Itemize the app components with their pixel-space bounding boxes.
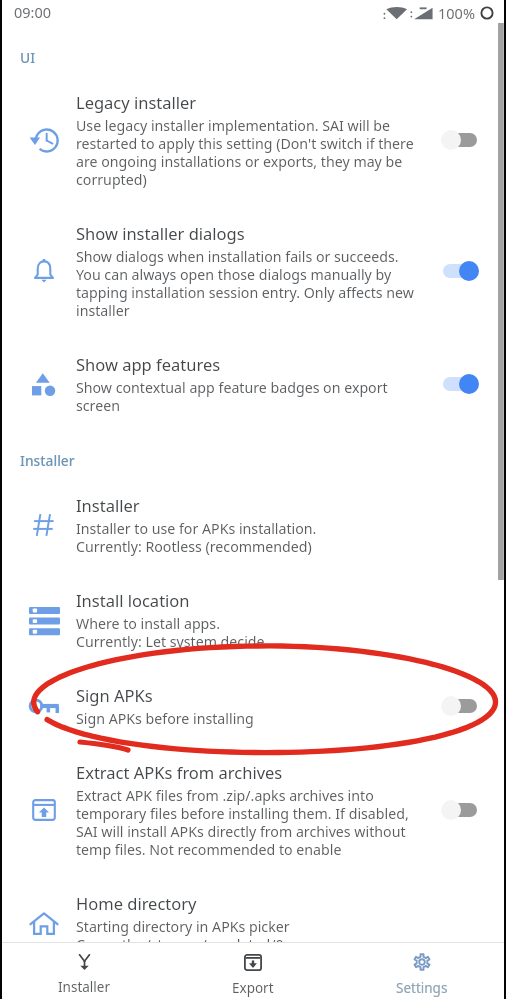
staticText: Sign APKs before installing [76,709,254,728]
button[interactable]: Toggle [450,125,502,155]
staticText: Installer [20,451,75,470]
staticText: Settings [396,979,448,997]
button[interactable]: Sign APKs [0,668,506,745]
button[interactable]: Toggle [450,691,502,721]
button[interactable]: Show installer dialogs [0,206,506,337]
staticText: Show contextual app feature badges on ex… [76,378,419,415]
staticText: Installer to use for APKs installation. … [76,519,317,556]
other: Export [244,954,262,971]
button[interactable]: Settings [337,943,506,999]
staticText: 09:00 [14,2,52,22]
button[interactable]: Legacy installer [0,75,506,206]
staticText: Where to install apps. Currently: Let sy… [76,614,265,651]
button[interactable]: Installer [0,943,168,999]
button[interactable]: Show app features [0,337,506,432]
staticText: UI [20,48,36,67]
staticText: Export [232,979,274,997]
staticText: Extract APK files from .zip/.apks archiv… [76,786,419,859]
button[interactable]: Toggle [450,795,502,825]
staticText: Sign APKs [76,684,153,706]
staticText: Show installer dialogs [76,222,245,244]
staticText: Installer [58,978,110,996]
staticText: Show dialogs when installation fails or … [76,247,419,320]
staticText: 100% [438,3,475,23]
button[interactable]: Extract APKs from archives [0,745,506,876]
staticText: Legacy installer [76,91,197,113]
staticText: Install location [76,589,190,611]
staticText: Extract APKs from archives [76,761,283,783]
staticText: Home directory [76,892,197,914]
other: Installer [78,954,91,970]
button[interactable]: Home directory [0,876,506,971]
button[interactable]: Toggle [450,369,502,399]
button[interactable]: Install location [0,573,506,668]
staticText: Show app features [76,353,221,375]
button[interactable]: Installer [0,478,506,573]
other: Settings [413,953,431,971]
staticText: Starting directory in APKs picker Curren… [76,917,290,954]
button[interactable]: Toggle [450,256,502,286]
staticText: Installer [76,494,140,516]
staticText: Use legacy installer implementation. SAI… [76,116,419,189]
button[interactable]: Export [168,943,337,999]
